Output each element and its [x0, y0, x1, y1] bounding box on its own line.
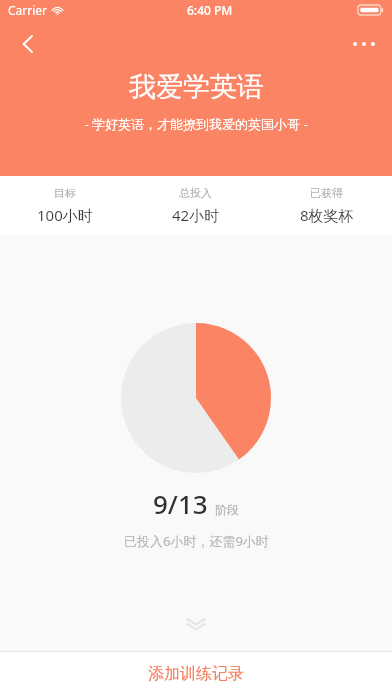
button[interactable]: 目标 — [0, 186, 130, 225]
button[interactable]: More options — [342, 22, 386, 66]
staticText: 100小时 — [37, 205, 93, 225]
staticText: 阶段 — [215, 502, 239, 517]
button[interactable]: 总投入 — [130, 186, 261, 225]
staticText: 6:40 PM — [187, 2, 233, 18]
staticText: 我爱学英语 — [129, 70, 264, 104]
button[interactable]: Expand — [174, 602, 218, 646]
staticText: 已投入6小时，还需9小时 — [124, 532, 269, 550]
staticText: 8枚奖杯 — [300, 205, 354, 225]
staticText: 9/13 — [153, 486, 208, 521]
staticText: Carrier — [8, 2, 48, 18]
staticText: 已获得 — [310, 186, 343, 200]
staticText: 添加训练记录 — [148, 664, 244, 684]
staticText: 目标 — [54, 186, 76, 200]
button[interactable]: 添加训练记录 — [0, 652, 392, 696]
button[interactable]: Back — [6, 22, 50, 66]
staticText: 总投入 — [179, 186, 212, 200]
staticText: - 学好英语，才能撩到我爱的英国小哥 - — [84, 115, 308, 133]
staticText: 42小时 — [172, 205, 220, 225]
button[interactable]: 已获得 — [261, 186, 392, 225]
